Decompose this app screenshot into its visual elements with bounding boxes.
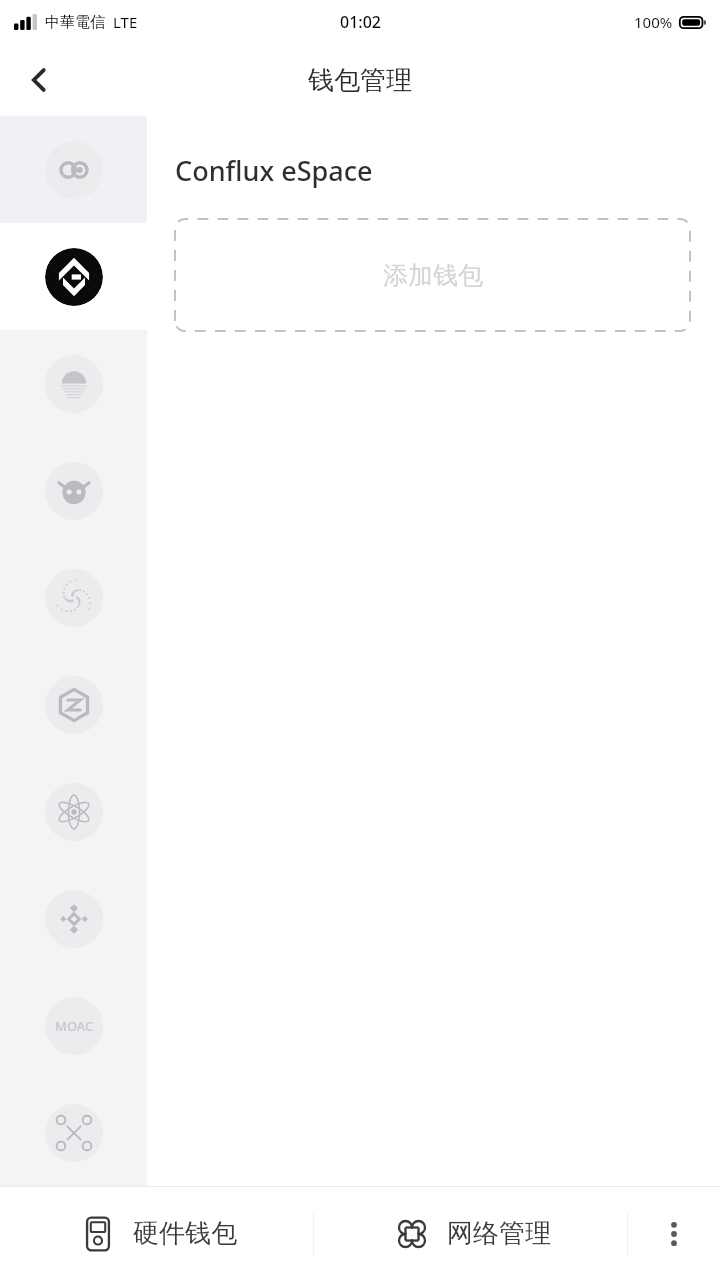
staticText: 01:02 — [340, 11, 381, 33]
staticText: 钱包管理 — [308, 64, 412, 97]
staticText: 添加钱包 — [383, 260, 483, 291]
button[interactable]: Cosmos — [0, 758, 147, 865]
button[interactable]: Conflux eSpace — [0, 223, 147, 330]
button[interactable]: 网络管理 — [314, 1187, 627, 1280]
button[interactable]: IOTA — [0, 544, 147, 651]
button[interactable]: Conflux Core — [0, 116, 147, 223]
button[interactable]: Binance — [0, 865, 147, 972]
button[interactable]: MOAC — [0, 972, 147, 1079]
button[interactable]: More options — [628, 1187, 720, 1280]
staticText: 网络管理 — [447, 1217, 551, 1250]
button[interactable]: Network 6 — [0, 651, 147, 758]
staticText: 100% — [634, 12, 673, 32]
staticText: 中華電信 — [45, 13, 105, 32]
staticText: Conflux eSpace — [175, 152, 373, 189]
button[interactable]: Network 10 — [0, 1079, 147, 1186]
button[interactable]: 添加钱包 — [175, 219, 690, 331]
button[interactable]: 硬件钱包 — [0, 1187, 313, 1280]
staticText: LTE — [113, 12, 138, 32]
staticText: 硬件钱包 — [133, 1217, 237, 1250]
button[interactable]: Network 4 — [0, 437, 147, 544]
button[interactable]: Network 3 — [0, 330, 147, 437]
button[interactable]: Back — [10, 51, 68, 109]
staticText: MOAC — [55, 1017, 94, 1035]
